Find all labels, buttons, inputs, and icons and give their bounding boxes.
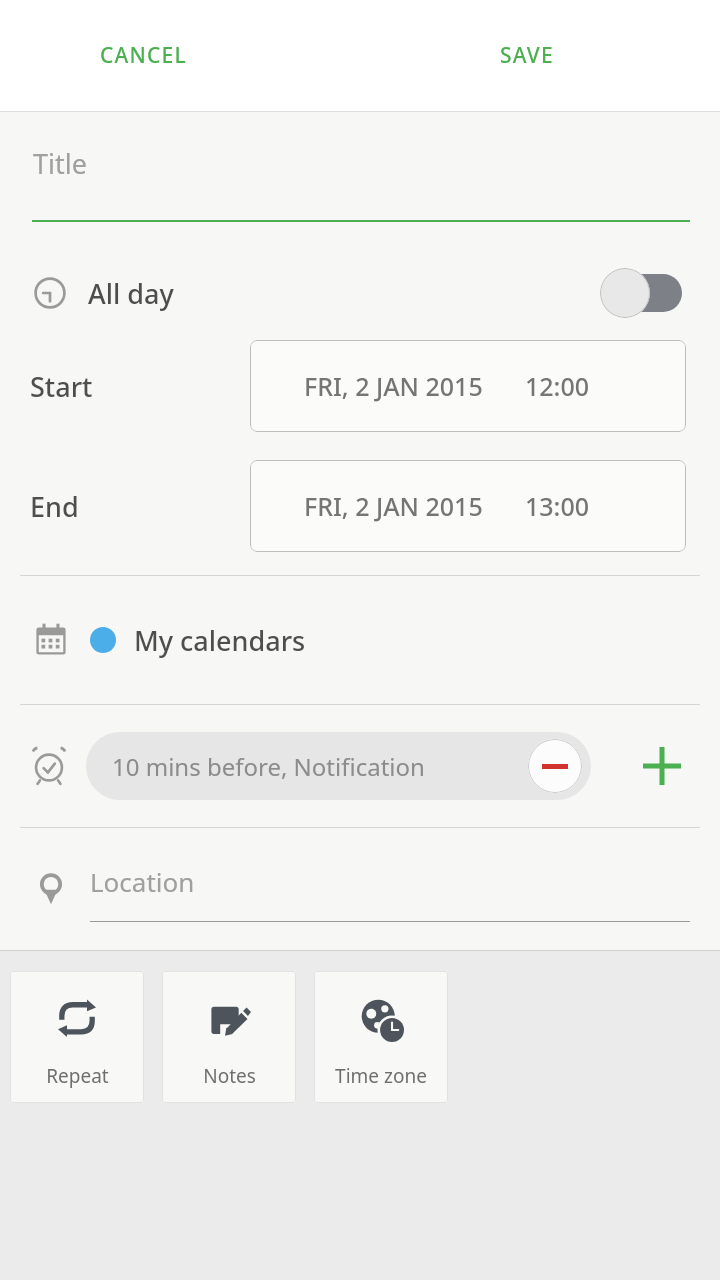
staticText: 13:00	[525, 489, 590, 523]
button[interactable]: FRI, 2 JAN 2015	[250, 340, 686, 432]
staticText: Time zone	[335, 1063, 427, 1089]
staticText: 10 mins before, Notification	[112, 750, 425, 783]
button[interactable]: SAVE	[488, 31, 566, 80]
button[interactable]: Time zone	[314, 971, 448, 1103]
staticText: Notes	[203, 1063, 256, 1089]
staticText: 12:00	[525, 369, 590, 403]
button[interactable]: Notes	[162, 971, 296, 1103]
button[interactable]: FRI, 2 JAN 2015	[250, 460, 686, 552]
staticText: SAVE	[500, 41, 554, 70]
button[interactable]: 10 mins before, Notification	[86, 732, 591, 800]
button[interactable]: My calendars	[0, 576, 720, 704]
staticText: FRI, 2 JAN 2015	[304, 369, 483, 403]
staticText: Location	[90, 864, 195, 899]
button[interactable]: All day toggle	[600, 265, 682, 321]
button[interactable]: Add reminder	[630, 734, 694, 798]
staticText: End	[30, 488, 79, 525]
staticText: Title	[33, 145, 87, 182]
button[interactable]: Remove reminder	[528, 739, 582, 793]
staticText: CANCEL	[100, 41, 187, 70]
button[interactable]: CANCEL	[88, 31, 199, 80]
button[interactable]: Repeat	[10, 971, 144, 1103]
staticText: Repeat	[46, 1063, 109, 1089]
button[interactable]: Location	[0, 828, 720, 950]
staticText: All day	[88, 275, 174, 312]
staticText: My calendars	[134, 622, 306, 659]
staticText: FRI, 2 JAN 2015	[304, 489, 483, 523]
staticText: Start	[30, 368, 93, 405]
button[interactable]: All day	[0, 252, 720, 334]
